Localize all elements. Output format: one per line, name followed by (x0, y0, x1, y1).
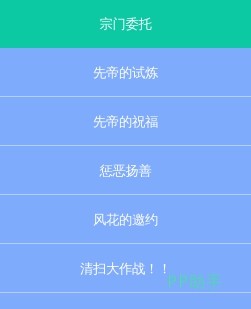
staticText: PP助手 (168, 270, 222, 292)
staticText: 先帝的祝福 (93, 113, 158, 130)
staticText: 惩恶扬善 (99, 162, 151, 179)
staticText: 宗门委托 (99, 16, 151, 32)
button[interactable]: 先帝的祝福 (0, 97, 251, 146)
button[interactable]: 惩恶扬善 (0, 146, 251, 195)
button[interactable]: 风花的邀约 (0, 195, 251, 244)
staticText: 先帝的试炼 (93, 64, 158, 81)
staticText: 风花的邀约 (93, 211, 158, 228)
staticText: 清扫大作战！！ (80, 260, 171, 277)
button[interactable]: 清扫大作战！！ (0, 244, 251, 293)
button[interactable]: 先帝的试炼 (0, 48, 251, 97)
